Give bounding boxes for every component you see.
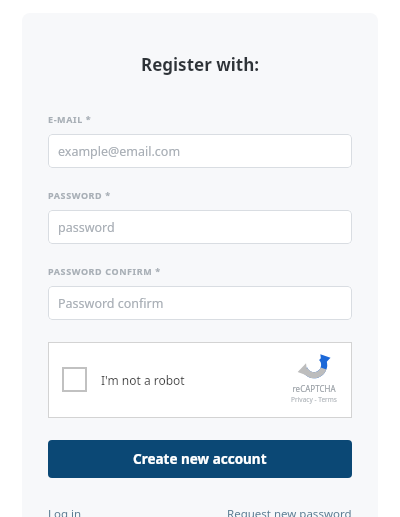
staticText: Request new password bbox=[227, 506, 352, 517]
staticText: reCAPTCHA bbox=[292, 383, 336, 394]
staticText: Register with: bbox=[22, 53, 378, 76]
staticText: Create new account bbox=[133, 450, 267, 468]
button[interactable]: I'm not a robot checkbox bbox=[48, 342, 352, 418]
staticText: PASSWORD * bbox=[48, 189, 111, 201]
staticText: Log in bbox=[48, 506, 82, 517]
button[interactable]: password bbox=[48, 210, 352, 244]
staticText: Privacy - Terms bbox=[291, 395, 337, 404]
staticText: E-MAIL * bbox=[48, 113, 92, 125]
other: reCAPTCHA logo bbox=[299, 350, 329, 380]
staticText: I'm not a robot bbox=[101, 372, 185, 388]
button[interactable]: Create new account bbox=[48, 440, 352, 478]
staticText: PASSWORD CONFIRM * bbox=[48, 265, 161, 277]
button[interactable]: Log in bbox=[48, 506, 82, 517]
staticText: password bbox=[58, 219, 115, 236]
button[interactable]: I'm not a robot checkbox bbox=[62, 367, 87, 392]
button[interactable]: Request new password bbox=[227, 506, 352, 517]
staticText: example@email.com bbox=[58, 143, 181, 160]
button[interactable]: Password confirm bbox=[48, 286, 352, 320]
button[interactable]: example@email.com bbox=[48, 134, 352, 168]
staticText: Password confirm bbox=[58, 295, 164, 312]
